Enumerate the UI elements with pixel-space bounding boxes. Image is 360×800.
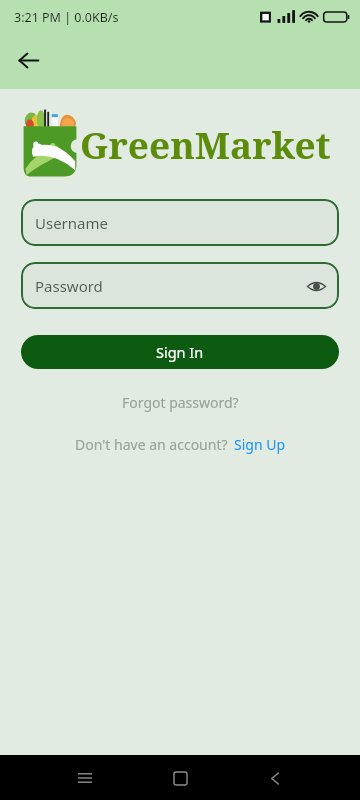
staticText: Forgot password? bbox=[122, 393, 239, 412]
button[interactable]: Sign Up bbox=[234, 432, 286, 457]
staticText: Sign In bbox=[156, 342, 204, 362]
button[interactable]: Show password bbox=[300, 270, 332, 302]
button[interactable]: Recent apps bbox=[68, 761, 102, 795]
staticText: Password bbox=[35, 276, 103, 296]
button[interactable]: Forgot password? bbox=[112, 390, 249, 415]
button[interactable]: Back bbox=[258, 761, 292, 795]
staticText: Don't have an account? bbox=[75, 435, 228, 454]
staticText: GreenMarket bbox=[80, 119, 331, 169]
staticText: Sign Up bbox=[234, 435, 286, 454]
button[interactable]: Password bbox=[21, 262, 339, 309]
staticText: 3:21 PM | 0.0KB/s bbox=[14, 9, 119, 26]
button[interactable]: Sign In bbox=[21, 335, 339, 369]
button[interactable]: Back bbox=[11, 43, 45, 77]
button[interactable]: Home bbox=[163, 761, 197, 795]
button[interactable]: Username bbox=[21, 199, 339, 246]
staticText: Username bbox=[35, 213, 108, 233]
